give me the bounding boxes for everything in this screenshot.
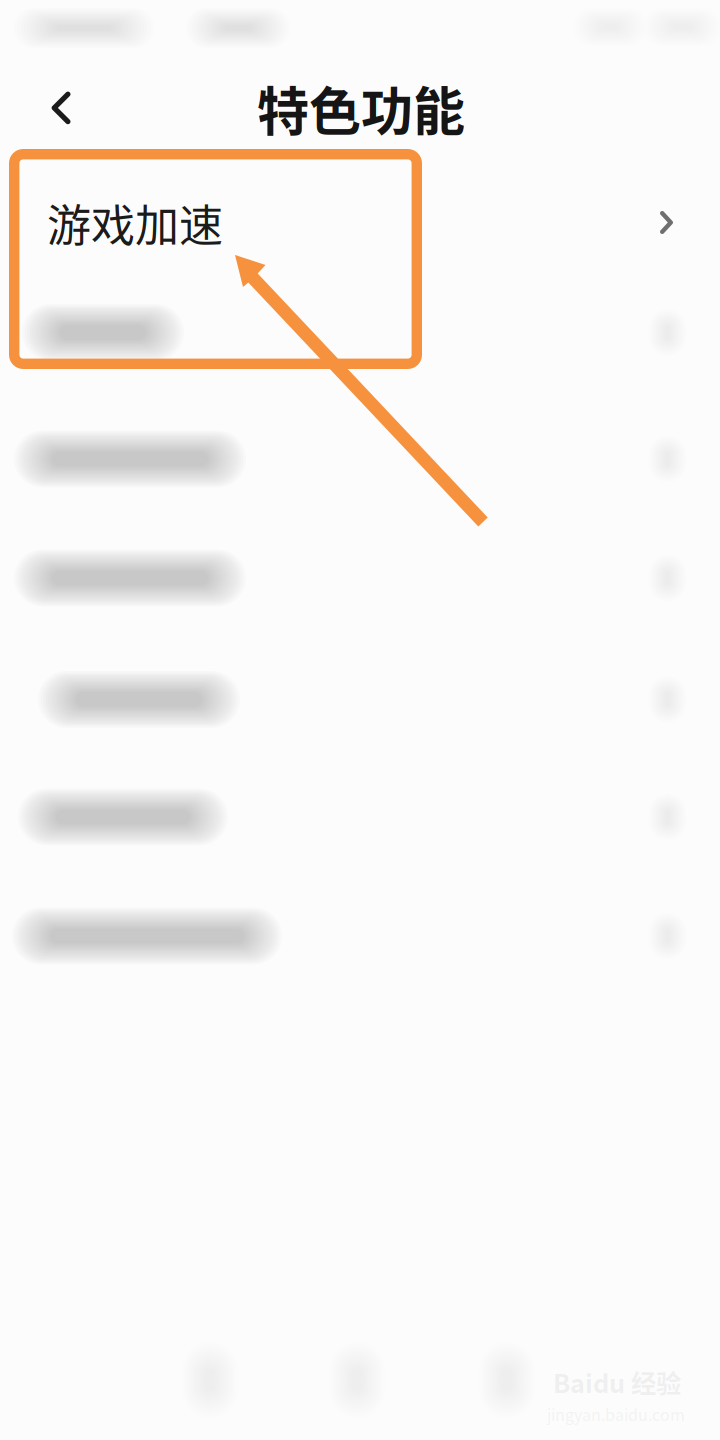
button[interactable]: Tab: [287, 1320, 427, 1440]
button[interactable]: [0, 639, 720, 759]
staticText: Baidu 经验: [553, 1364, 681, 1400]
button[interactable]: Tab: [140, 1320, 280, 1440]
button[interactable]: [0, 757, 720, 877]
button[interactable]: Back: [19, 64, 103, 152]
staticText: 特色功能: [257, 70, 465, 146]
button[interactable]: Tab: [437, 1320, 577, 1440]
button[interactable]: [0, 876, 720, 996]
button[interactable]: [0, 272, 720, 392]
button[interactable]: [0, 399, 720, 519]
button[interactable]: 游戏加速: [0, 162, 720, 282]
staticText: 游戏加速: [47, 191, 223, 254]
button[interactable]: [0, 518, 720, 638]
